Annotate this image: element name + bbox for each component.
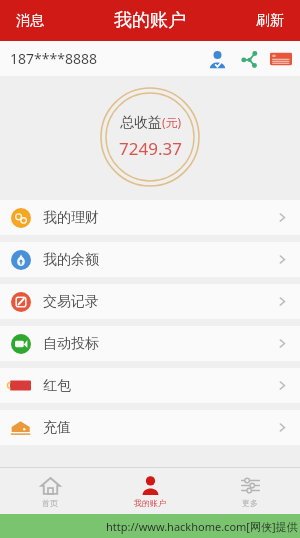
staticText: 187****8888 [10,49,97,68]
button[interactable]: 自动投标 [0,326,300,361]
staticText: 刷新 [256,12,284,30]
staticText: 更多 [242,498,258,508]
button[interactable]: Verified user [204,46,230,72]
button[interactable]: 红包 [0,368,300,403]
staticText: 交易记录 [43,293,99,311]
button[interactable]: 首页 [0,468,100,514]
staticText: 红包 [43,377,71,395]
staticText: 我的账户 [134,498,166,508]
button[interactable]: 充值 [0,410,300,445]
button[interactable]: Share [236,46,262,72]
staticText: 我的余额 [43,251,99,269]
button[interactable]: 我的账户 [100,468,200,514]
button[interactable]: 更多 [200,468,300,514]
staticText: http://www.hackhome.com[网侠]提供 [106,519,298,534]
staticText: 消息 [16,12,44,30]
button[interactable]: 消息 [0,0,60,41]
staticText: 自动投标 [43,335,99,353]
staticText: 7249.37 [119,137,182,160]
staticText: 充值 [43,419,71,437]
button[interactable]: 我的余额 [0,242,300,277]
button[interactable]: 刷新 [240,0,300,41]
staticText: 总收益(元) [120,114,182,132]
button[interactable]: 我的理财 [0,200,300,235]
button[interactable]: 交易记录 [0,284,300,319]
staticText: 首页 [42,498,58,508]
staticText: 我的账户 [114,9,186,32]
staticText: 我的理财 [43,209,99,227]
button[interactable]: Bank card [268,46,294,72]
